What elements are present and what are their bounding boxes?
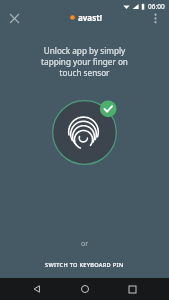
button[interactable]: Home bbox=[74, 278, 96, 300]
button[interactable]: Back bbox=[26, 278, 48, 300]
button[interactable]: Recent apps bbox=[121, 278, 143, 300]
staticText: Unlock app by simply tapping your finger… bbox=[12, 45, 157, 78]
staticText: avast! bbox=[78, 12, 102, 23]
staticText: or bbox=[0, 239, 169, 249]
button[interactable]: Fingerprint sensor bbox=[52, 100, 117, 165]
button[interactable]: Close bbox=[3, 7, 25, 29]
button[interactable]: More options bbox=[144, 7, 166, 29]
staticText: SWITCH TO KEYBOARD PIN bbox=[45, 261, 124, 269]
button[interactable]: SWITCH TO KEYBOARD PIN bbox=[0, 257, 169, 273]
staticText: 06:00 bbox=[148, 2, 165, 11]
